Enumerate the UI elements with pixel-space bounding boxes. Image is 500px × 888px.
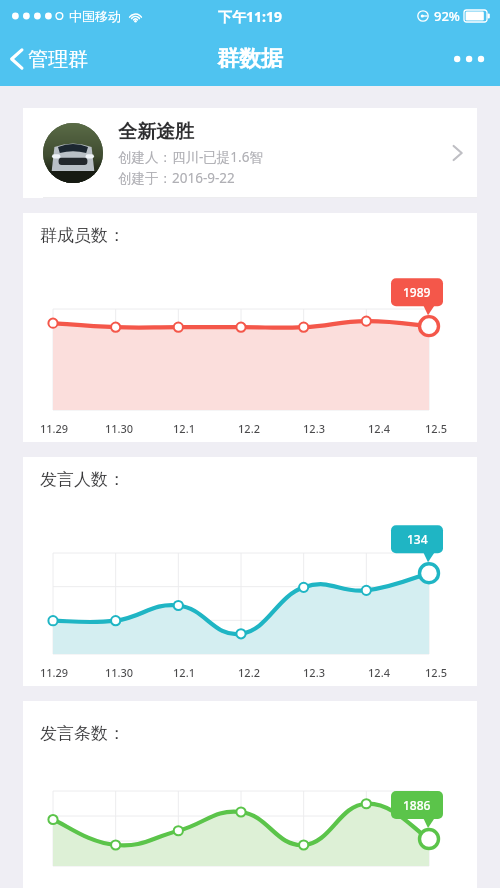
staticText: 全新途胜 — [118, 120, 194, 144]
staticText: 12.3 — [291, 421, 337, 436]
staticText: 1886 — [403, 797, 431, 813]
staticText: 1989 — [403, 284, 431, 300]
button[interactable]: 全新途胜 — [23, 108, 477, 198]
staticText: 下午11:19 — [218, 7, 282, 26]
staticText: 创建于：2016-9-22 — [118, 169, 235, 187]
staticText: 12.4 — [356, 665, 402, 680]
staticText: 群成员数： — [40, 225, 125, 246]
button[interactable]: 群成员数： — [23, 213, 477, 442]
staticText: 11.29 — [31, 665, 77, 680]
button[interactable]: 管理群 — [0, 32, 98, 86]
staticText: 创建人：四川-已提1.6智 — [118, 148, 263, 166]
staticText: 管理群 — [28, 47, 88, 72]
staticText: 中国移动 — [69, 8, 121, 24]
staticText: 12.5 — [413, 421, 459, 436]
button[interactable]: More options — [438, 32, 500, 86]
staticText: 134 — [407, 531, 428, 547]
staticText: 11.29 — [31, 421, 77, 436]
staticText: 11.30 — [96, 421, 142, 436]
staticText: 92% — [434, 7, 460, 25]
staticText: 12.1 — [161, 665, 207, 680]
staticText: 群数据 — [217, 45, 283, 73]
staticText: 12.2 — [226, 421, 272, 436]
staticText: 12.5 — [413, 665, 459, 680]
staticText: 11.30 — [96, 665, 142, 680]
button[interactable]: 发言人数： — [23, 457, 477, 686]
button[interactable]: 发言条数： — [23, 701, 477, 888]
staticText: 12.3 — [291, 665, 337, 680]
staticText: 12.1 — [161, 421, 207, 436]
staticText: 12.4 — [356, 421, 402, 436]
staticText: 发言人数： — [40, 469, 125, 490]
staticText: 发言条数： — [40, 723, 125, 744]
staticText: 12.2 — [226, 665, 272, 680]
